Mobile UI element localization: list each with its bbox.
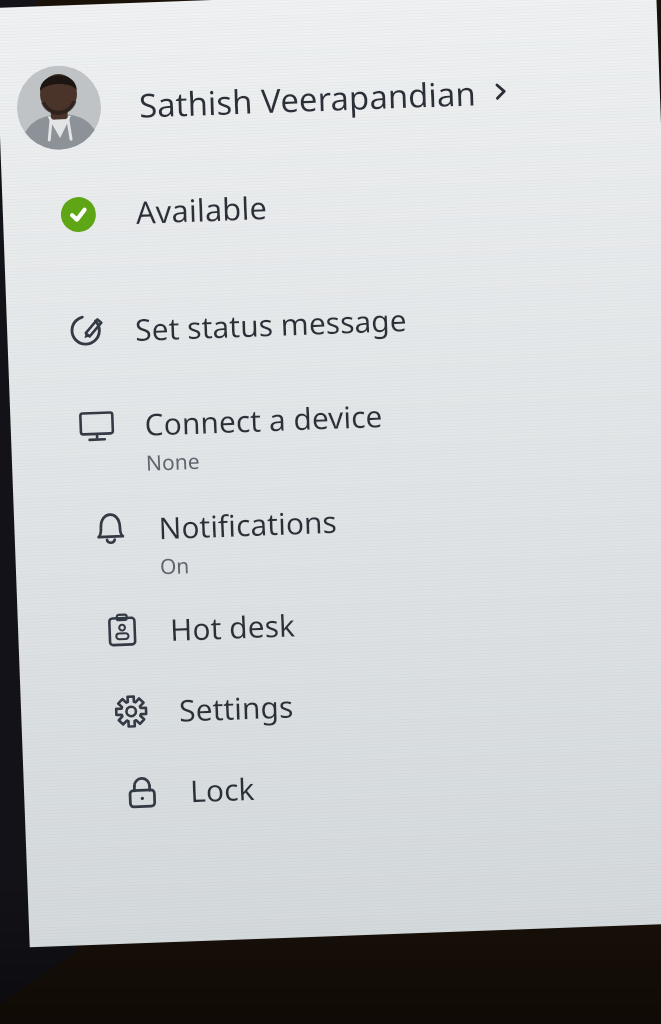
other: Settings [110,691,152,732]
staticText: Connect a device [144,395,383,445]
staticText: On [159,551,190,581]
button[interactable]: Set status message [6,285,661,359]
other: Connect a device [76,405,117,446]
staticText: Available [135,186,268,233]
button[interactable]: Hot desk [17,586,661,659]
button[interactable]: Connect a device [10,380,661,487]
staticText: Lock [189,768,256,811]
other: Notifications [90,508,131,550]
button[interactable]: Lock [23,748,661,821]
other: Set status message [66,310,108,351]
staticText: Notifications [158,501,338,548]
button[interactable]: Profile picture [0,36,661,160]
button[interactable]: Available [2,162,661,248]
staticText: None [146,447,201,478]
other: Lock [121,771,163,813]
staticText: Sathish Veerapandian [138,70,476,128]
staticText: Hot desk [169,604,296,650]
other: Hot desk [101,610,143,651]
staticText: Settings [178,685,295,731]
other: Profile picture [15,64,102,151]
staticText: Set status message [134,299,408,350]
button[interactable]: Notifications [14,484,661,591]
button[interactable]: Settings [20,667,661,740]
